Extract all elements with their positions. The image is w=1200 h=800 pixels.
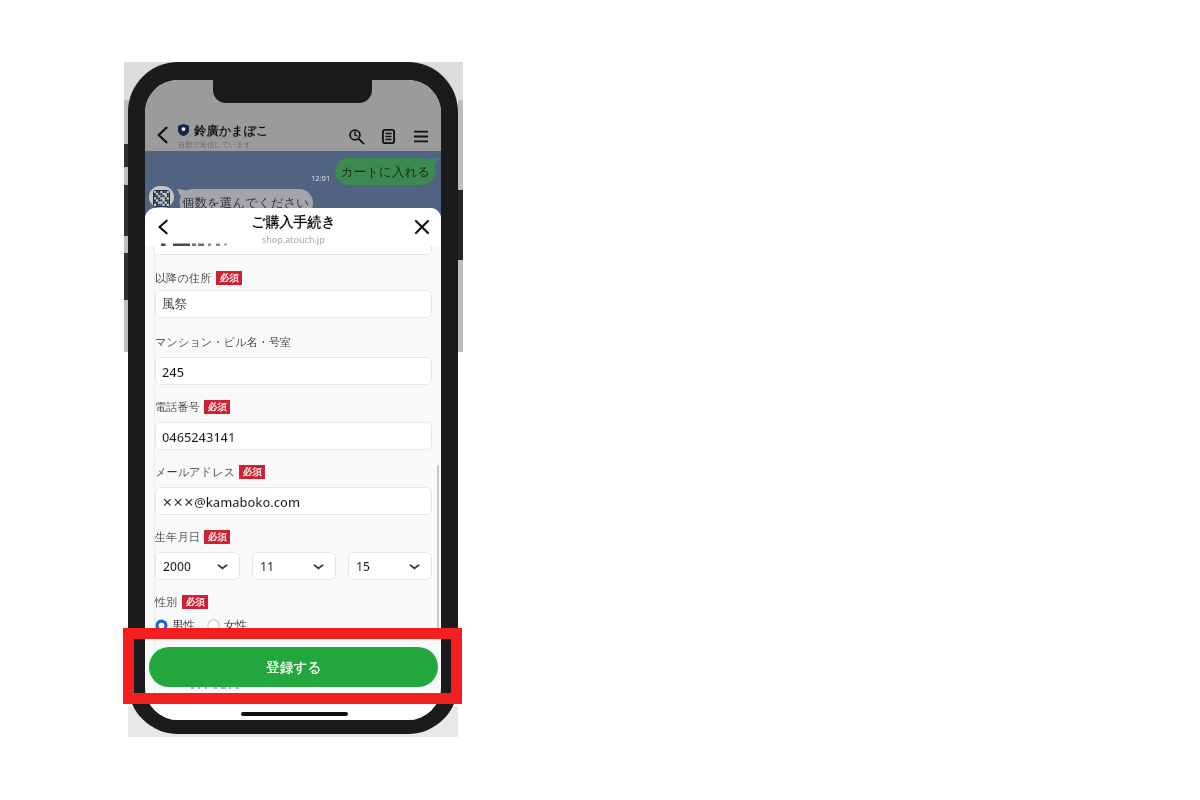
staticText: ご購入手続き xyxy=(251,214,336,232)
staticText: 必須 xyxy=(208,531,227,543)
staticText: 必須 xyxy=(243,466,262,478)
button[interactable]: ✕✕✕@kamaboko.com xyxy=(155,487,432,515)
staticText: 以降の住所 xyxy=(155,271,212,285)
staticText: 女性 xyxy=(224,618,248,633)
button[interactable]: 風祭 xyxy=(155,290,432,318)
button[interactable] xyxy=(207,619,220,632)
staticText: shop.atouch.jp xyxy=(262,233,325,245)
staticText: 必須 xyxy=(220,272,239,284)
button[interactable]: 2000 xyxy=(155,552,240,580)
button[interactable]: 登録する xyxy=(149,647,438,687)
staticText: 男性 xyxy=(172,618,196,633)
staticText: 性別 xyxy=(155,595,178,609)
staticText: 鈴廣かまぼこ xyxy=(194,123,269,138)
staticText: 0465243141 xyxy=(162,428,236,445)
button[interactable]: Close xyxy=(411,216,433,238)
button[interactable]: 0465243141 xyxy=(155,422,432,450)
staticText: 電話番号 xyxy=(155,400,200,414)
staticText: 245 xyxy=(162,363,184,380)
button[interactable]: Search xyxy=(345,125,368,148)
staticText: 個数を選んでください xyxy=(182,195,310,211)
staticText: 風祭 xyxy=(162,296,188,312)
staticText: 必須 xyxy=(186,596,205,608)
staticText: 11 xyxy=(260,558,274,575)
button[interactable]: 245 xyxy=(155,357,432,385)
staticText: 2000 xyxy=(163,558,191,575)
button[interactable]: Notes xyxy=(377,125,400,148)
staticText: 12:01 xyxy=(311,173,331,183)
staticText: カートに入れる xyxy=(341,164,430,180)
staticText: マンション・ビル名・号室 xyxy=(155,335,292,349)
staticText: 登録する xyxy=(266,659,322,676)
staticText: メールアドレス xyxy=(155,465,235,479)
staticText: 15 xyxy=(356,558,370,575)
button[interactable]: 11 xyxy=(252,552,336,580)
button[interactable]: Back xyxy=(149,122,175,148)
button[interactable]: Menu xyxy=(409,125,432,148)
button[interactable]: 15 xyxy=(348,552,432,580)
button[interactable]: Back xyxy=(151,215,175,239)
staticText: 自動で返信しています xyxy=(178,140,251,149)
staticText: 生年月日 xyxy=(155,530,200,544)
staticText: ✕✕✕@kamaboko.com xyxy=(162,493,301,510)
staticText: 必須 xyxy=(208,401,227,413)
button[interactable] xyxy=(155,619,168,632)
